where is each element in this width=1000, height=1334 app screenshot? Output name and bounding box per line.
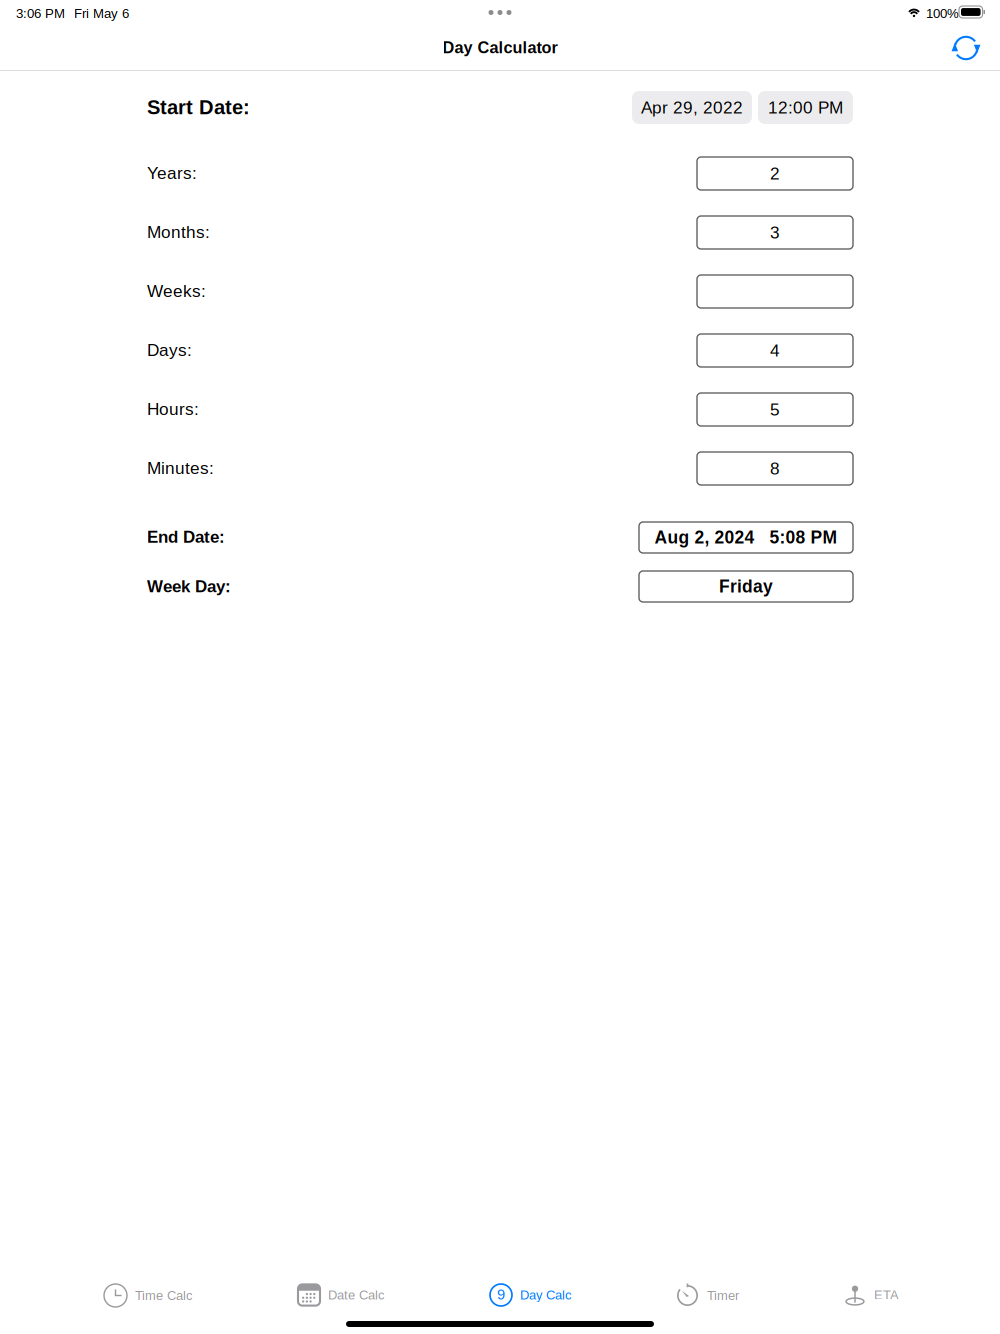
button[interactable]: Refresh bbox=[943, 25, 989, 71]
staticText: Day Calculator bbox=[442, 38, 557, 57]
staticText: Day Calc bbox=[520, 1288, 571, 1302]
button[interactable]: 8 bbox=[697, 452, 853, 485]
staticText: 3:06 PM bbox=[16, 6, 65, 21]
staticText: Date Calc bbox=[328, 1288, 384, 1302]
staticText: ETA bbox=[874, 1288, 899, 1302]
button[interactable]: 12:00 PM bbox=[758, 91, 853, 124]
staticText: Months: bbox=[147, 222, 210, 242]
staticText: 2 bbox=[770, 164, 780, 183]
button[interactable]: 2 bbox=[697, 157, 853, 190]
staticText: Hours: bbox=[147, 399, 199, 419]
staticText: 12:00 PM bbox=[768, 98, 843, 117]
staticText: 5 bbox=[770, 400, 780, 419]
button[interactable]: 9 bbox=[484, 1275, 577, 1315]
button[interactable]: ETA bbox=[838, 1275, 905, 1315]
staticText: End Date: bbox=[147, 527, 225, 546]
staticText: Weeks: bbox=[147, 281, 206, 301]
staticText: Apr 29, 2022 bbox=[641, 98, 743, 117]
staticText: Friday bbox=[719, 577, 773, 596]
staticText: Days: bbox=[147, 340, 192, 360]
staticText: 9 bbox=[497, 1286, 505, 1303]
button[interactable]: 5 bbox=[697, 393, 853, 426]
staticText: 8 bbox=[770, 459, 780, 478]
staticText: 3 bbox=[770, 223, 780, 242]
staticText: Timer bbox=[707, 1288, 739, 1303]
button[interactable]: Aug 2, 2024 5:08 PM bbox=[639, 522, 853, 553]
staticText: Years: bbox=[147, 163, 197, 183]
button[interactable]: 3 bbox=[697, 216, 853, 249]
button[interactable]: Apr 29, 2022 bbox=[632, 91, 752, 124]
staticText: Minutes: bbox=[147, 458, 214, 478]
staticText: Fri May 6 bbox=[74, 6, 129, 21]
staticText: Start Date: bbox=[147, 96, 250, 118]
staticText: 100% bbox=[926, 6, 959, 21]
button[interactable]: 4 bbox=[697, 334, 853, 367]
staticText: Time Calc bbox=[135, 1288, 192, 1303]
button[interactable]: Time Calc bbox=[98, 1275, 198, 1316]
staticText: 4 bbox=[770, 341, 780, 360]
button[interactable] bbox=[697, 275, 853, 308]
staticText: Week Day: bbox=[147, 577, 231, 596]
button[interactable]: Friday bbox=[639, 571, 853, 602]
button[interactable]: Date Calc bbox=[292, 1275, 390, 1315]
staticText: Aug 2, 2024 5:08 PM bbox=[654, 528, 837, 547]
button[interactable]: Timer bbox=[670, 1275, 745, 1316]
